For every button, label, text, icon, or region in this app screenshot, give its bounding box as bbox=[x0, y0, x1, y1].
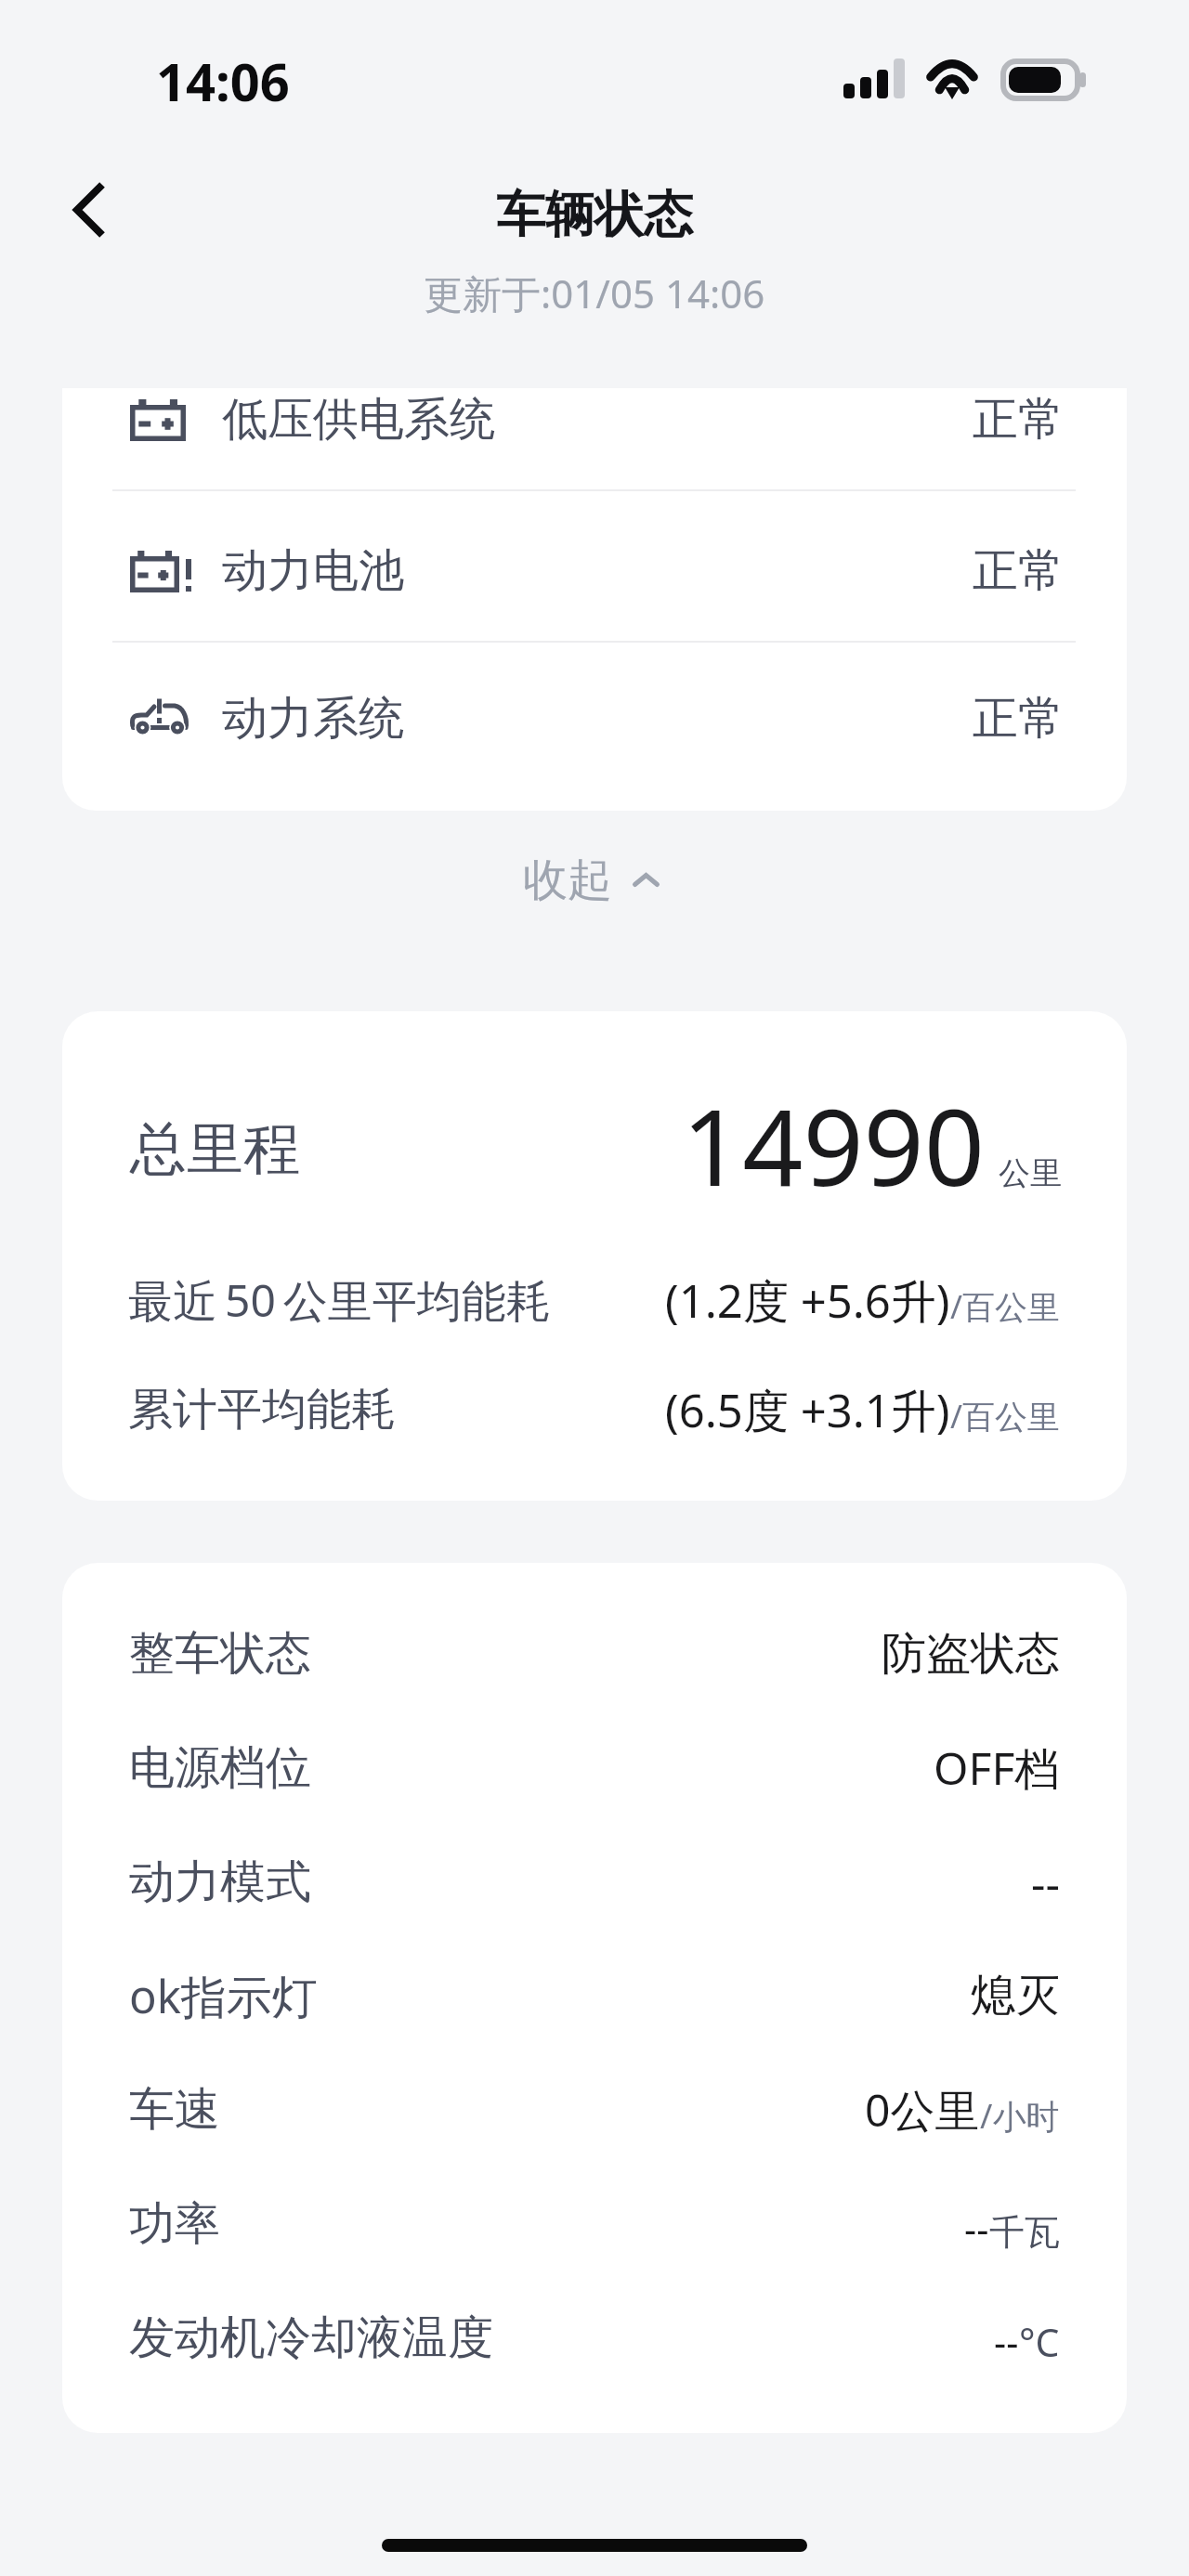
staticText: -- bbox=[1031, 1853, 1060, 1913]
staticText: 正常 bbox=[973, 542, 1064, 600]
button[interactable]: 发动机冷却液温度 bbox=[62, 2282, 1127, 2395]
button[interactable]: 车速 bbox=[62, 2053, 1127, 2166]
button[interactable]: 动力电池 bbox=[62, 498, 1127, 644]
staticText: /小时 bbox=[980, 2093, 1060, 2139]
staticText: 电源档位 bbox=[129, 1739, 311, 1797]
staticText: 收起 bbox=[523, 852, 612, 908]
button[interactable]: 动力系统 bbox=[62, 645, 1127, 792]
staticText: 14:06 bbox=[156, 46, 290, 116]
staticText: 发动机冷却液温度 bbox=[129, 2309, 493, 2367]
button[interactable]: Back bbox=[48, 169, 130, 251]
button[interactable]: 功率 bbox=[62, 2167, 1127, 2281]
staticText: 0公里 bbox=[865, 2079, 980, 2140]
staticText: 熄灭 bbox=[971, 1968, 1060, 2023]
staticText: 动力模式 bbox=[129, 1854, 311, 1911]
staticText: 功率 bbox=[129, 2195, 220, 2253]
staticText: 动力电池 bbox=[222, 542, 404, 600]
staticText: 千瓦 bbox=[989, 2210, 1060, 2255]
staticText: -- bbox=[994, 2316, 1019, 2368]
staticText: 动力系统 bbox=[222, 690, 404, 748]
button[interactable]: 电源档位 bbox=[62, 1711, 1127, 1825]
staticText: 总里程 bbox=[130, 1113, 300, 1185]
staticText: 14990 bbox=[682, 1073, 986, 1216]
staticText: 正常 bbox=[973, 690, 1064, 748]
button[interactable]: 累计平均能耗 bbox=[62, 1373, 1127, 1447]
staticText: /百公里 bbox=[950, 1284, 1061, 1329]
staticText: 最近 50 公里平均能耗 bbox=[128, 1269, 551, 1331]
staticText: ok指示灯 bbox=[129, 1965, 318, 2027]
button[interactable]: ok指示灯 bbox=[62, 1939, 1127, 2052]
staticText: 防盗状态 bbox=[882, 1626, 1060, 1682]
staticText: 车速 bbox=[129, 2081, 220, 2139]
button[interactable]: 最近 50 公里平均能耗 bbox=[62, 1263, 1127, 1337]
button[interactable]: 低压供电系统 bbox=[62, 388, 1127, 493]
staticText: OFF档 bbox=[934, 1737, 1060, 1799]
staticText: 更新于:01/05 14:06 bbox=[424, 267, 765, 319]
staticText: (6.5度 +3.1升) bbox=[665, 1379, 950, 1441]
staticText: 正常 bbox=[973, 391, 1064, 449]
staticText: °C bbox=[1019, 2316, 1060, 2368]
staticText: 累计平均能耗 bbox=[128, 1382, 396, 1438]
staticText: 车辆状态 bbox=[496, 184, 693, 246]
button[interactable]: 整车状态 bbox=[62, 1597, 1127, 1711]
button[interactable]: 收起 bbox=[523, 843, 660, 917]
staticText: (1.2度 +5.6升) bbox=[665, 1269, 950, 1332]
staticText: 整车状态 bbox=[129, 1625, 311, 1683]
button[interactable]: 动力模式 bbox=[62, 1826, 1127, 1939]
staticText: 低压供电系统 bbox=[222, 391, 495, 449]
staticText: -- bbox=[964, 2203, 989, 2255]
staticText: /百公里 bbox=[950, 1394, 1061, 1438]
staticText: 公里 bbox=[999, 1153, 1062, 1193]
